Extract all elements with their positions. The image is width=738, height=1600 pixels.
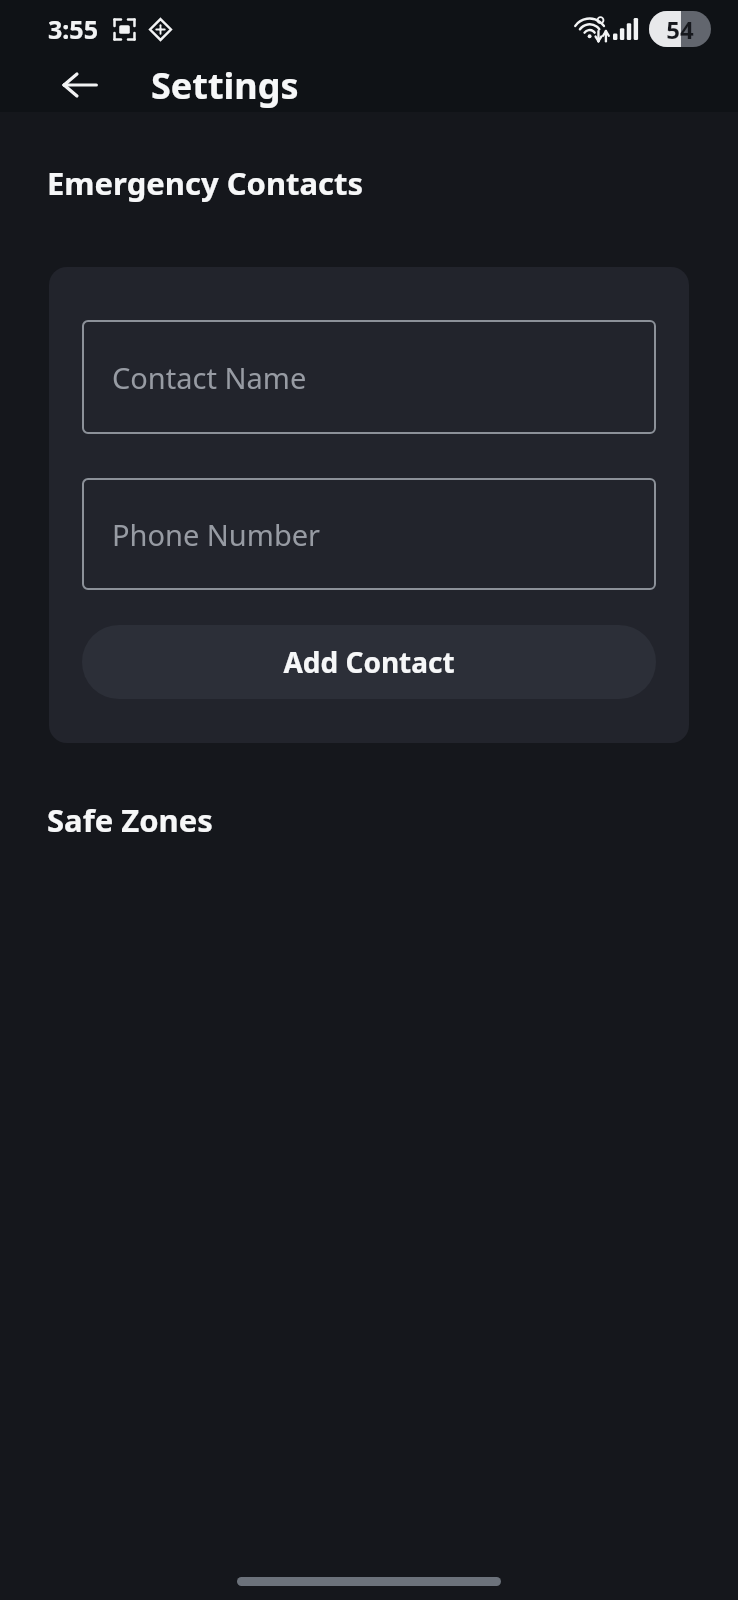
staticText: Safe Zones (47, 799, 213, 841)
staticText: Add Contact (283, 643, 455, 681)
staticText: Phone Number (112, 515, 321, 554)
button[interactable]: Add Contact (82, 625, 656, 699)
staticText: 54 (666, 13, 694, 46)
staticText: 3:55 (48, 12, 98, 46)
staticText: Contact Name (112, 358, 307, 397)
button[interactable]: Contact Name (82, 320, 656, 434)
button[interactable]: Phone Number (82, 478, 656, 590)
button[interactable]: Back (49, 57, 111, 112)
staticText: Settings (151, 61, 299, 110)
staticText: Emergency Contacts (47, 162, 364, 204)
